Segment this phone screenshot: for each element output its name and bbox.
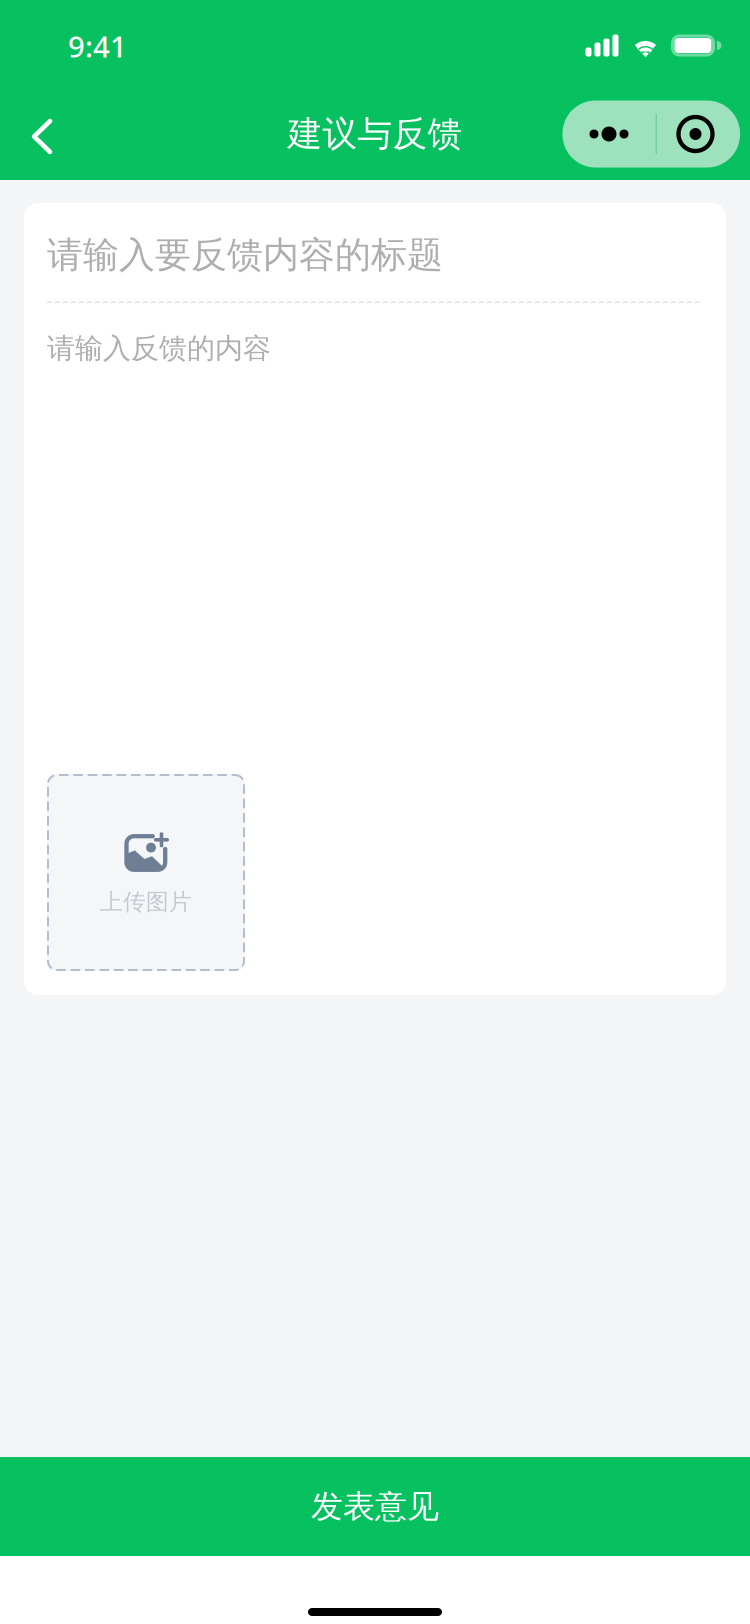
- staticText: 请输入要反馈内容的标题: [47, 233, 443, 277]
- staticText: 请输入反馈的内容: [47, 331, 271, 366]
- button[interactable]: Back: [0, 88, 84, 180]
- button[interactable]: Close mini program: [657, 100, 740, 167]
- button[interactable]: More options: [562, 100, 655, 167]
- button[interactable]: 发表意见: [0, 1457, 750, 1556]
- staticText: 上传图片: [100, 888, 192, 916]
- staticText: 建议与反馈: [287, 113, 462, 155]
- staticText: 9:41: [68, 26, 127, 65]
- button[interactable]: Upload image: [47, 774, 245, 971]
- staticText: 发表意见: [311, 1487, 439, 1526]
